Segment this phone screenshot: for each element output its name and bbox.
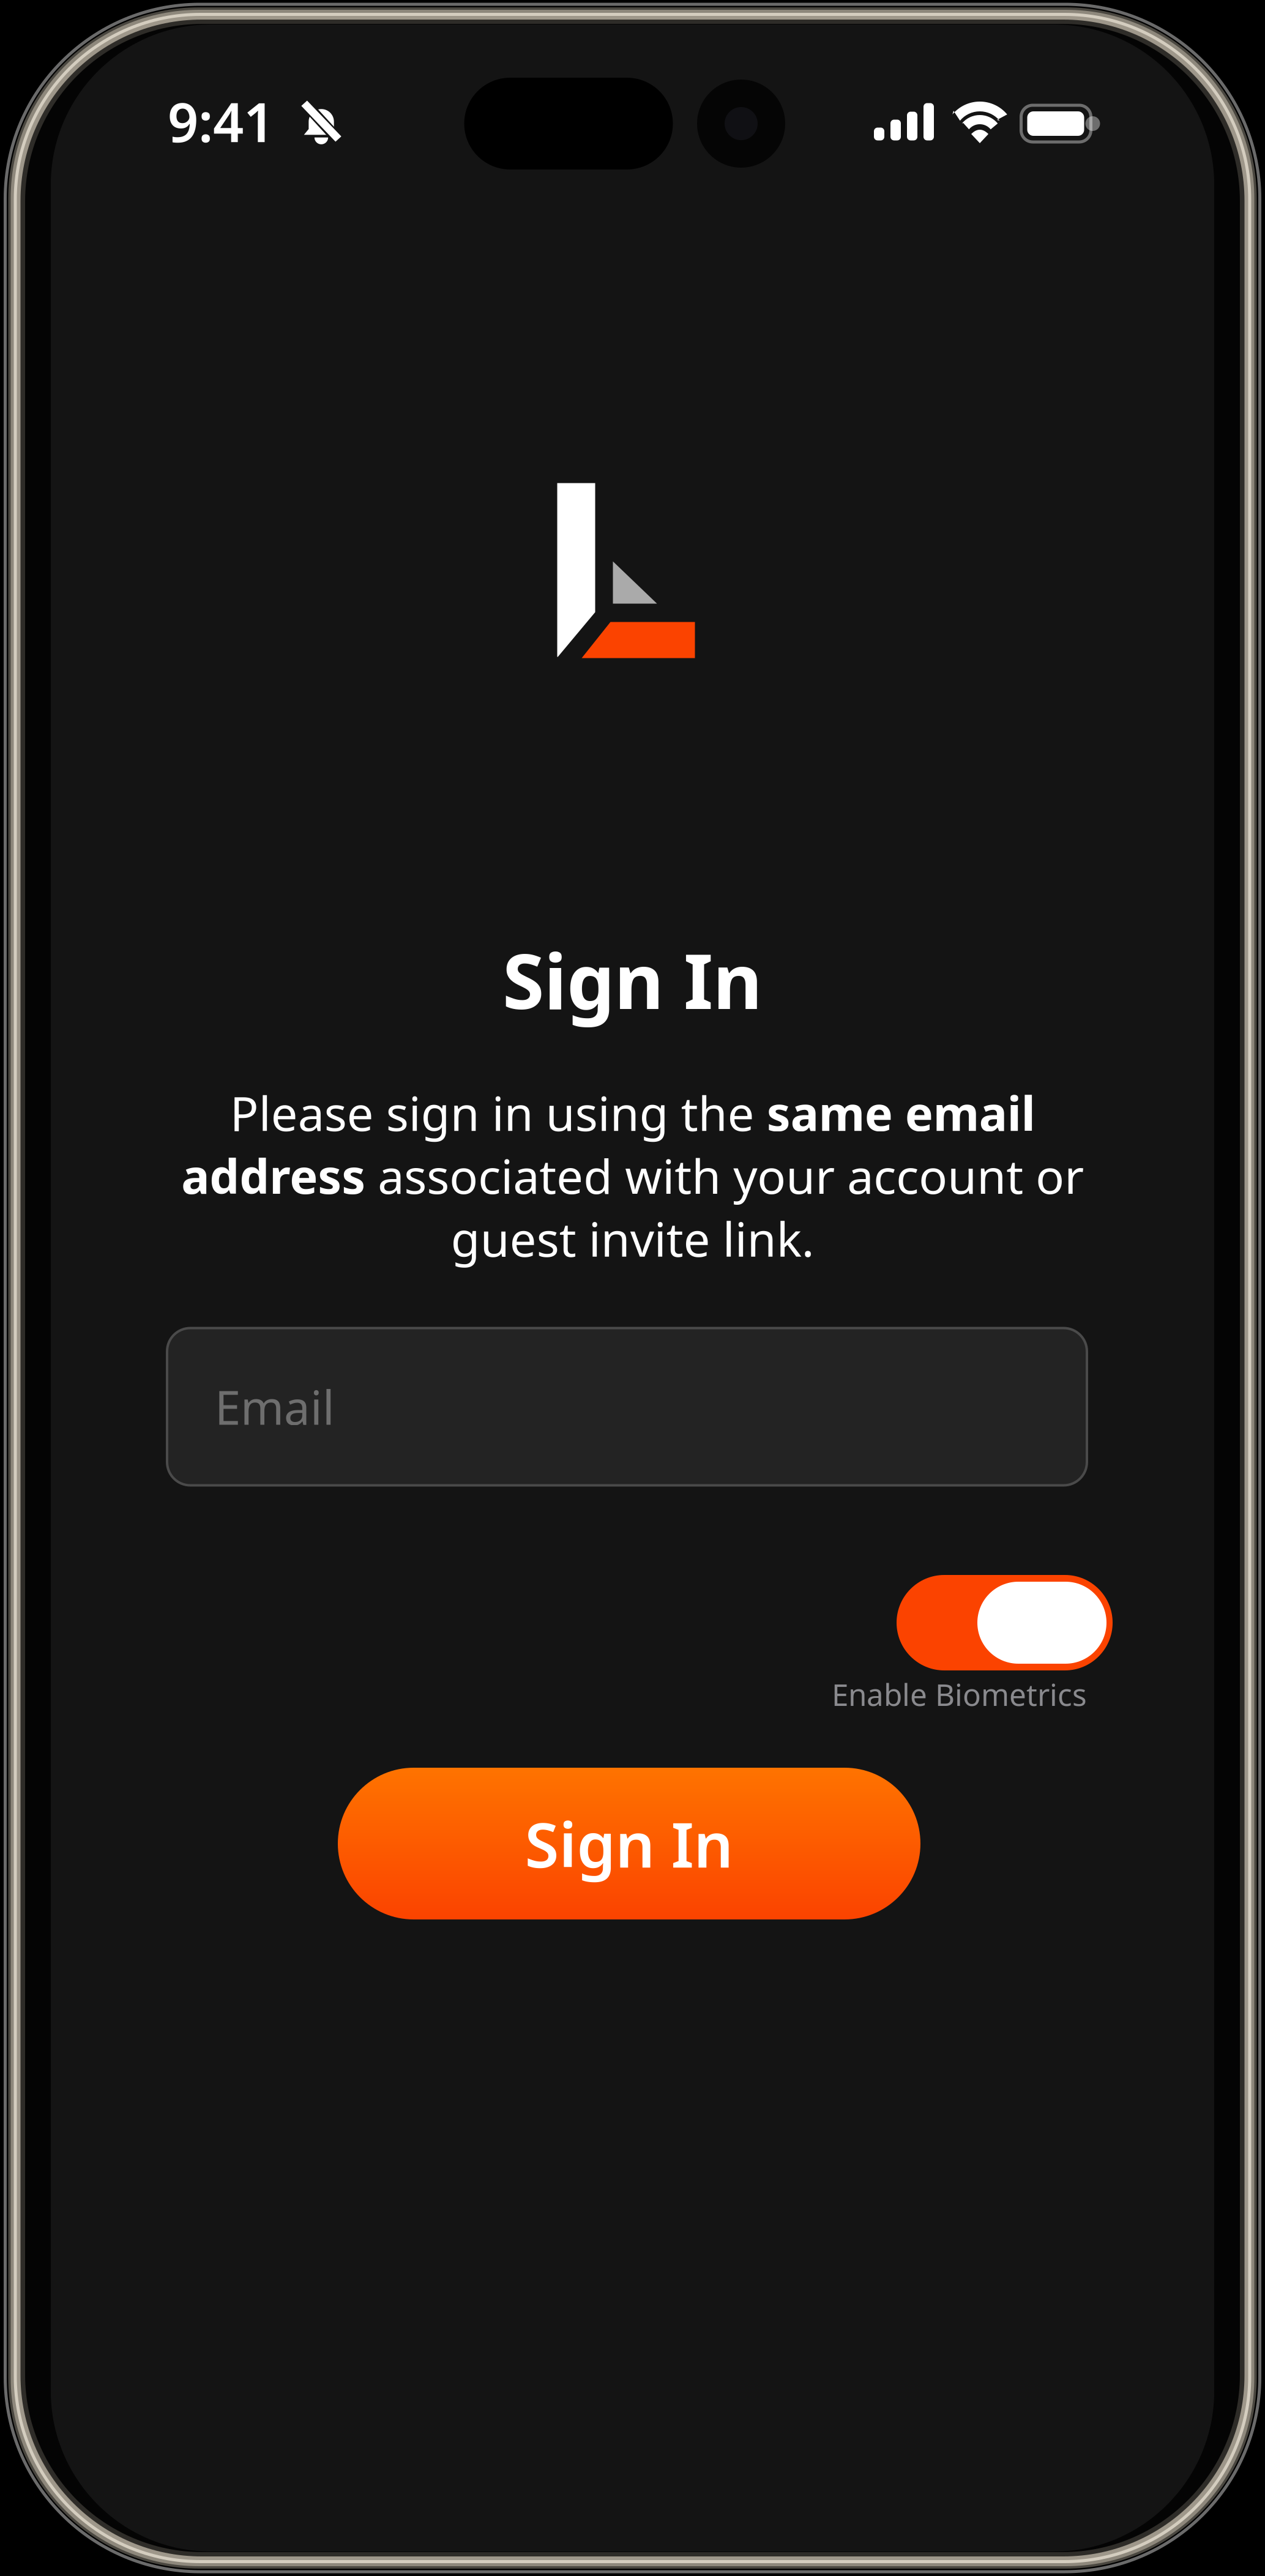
- staticText: Please sign in using the same email: [230, 1081, 1035, 1144]
- button[interactable]: Email: [167, 1328, 1087, 1485]
- button[interactable]: Sign In: [338, 1768, 920, 1919]
- staticText: address associated with your account or: [181, 1144, 1084, 1207]
- staticText: guest invite link.: [451, 1207, 814, 1270]
- staticText: Enable Biometrics: [832, 1674, 1087, 1714]
- staticText: 9:41: [168, 85, 274, 157]
- button[interactable]: Enable Biometrics: [167, 1575, 1087, 1719]
- staticText: Sign In: [525, 1802, 733, 1885]
- staticText: Email: [215, 1376, 335, 1438]
- staticText: Sign In: [502, 929, 763, 1030]
